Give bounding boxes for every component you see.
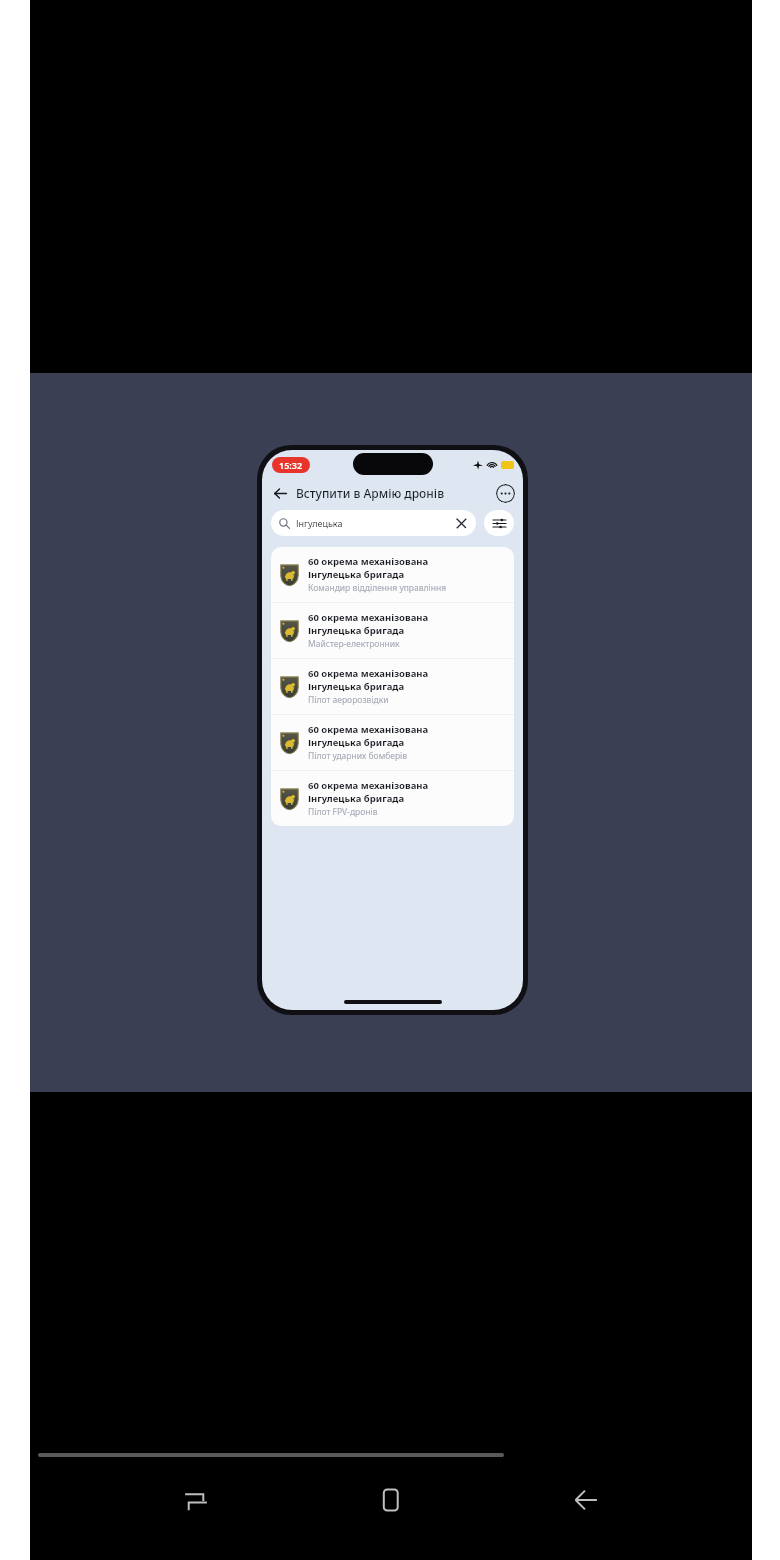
staticText: 60 окрема механізована <box>308 555 429 568</box>
staticText: Інгулецька бригада <box>308 792 405 805</box>
staticText: Інгулецька бригада <box>308 736 405 749</box>
button[interactable]: More options <box>496 484 515 503</box>
button[interactable]: Інгулецька <box>271 510 476 536</box>
button[interactable]: Recent apps <box>167 1471 225 1529</box>
staticText: Пілот FPV-дронів <box>308 806 378 818</box>
button[interactable]: Clear search <box>454 516 468 530</box>
staticText: 60 окрема механізована <box>308 611 429 624</box>
button[interactable]: 60 окрема механізована <box>271 715 514 770</box>
staticText: Інгулецька бригада <box>308 624 405 637</box>
button[interactable]: 60 окрема механізована <box>271 659 514 714</box>
staticText: Пілот ударних бомберів <box>308 750 408 762</box>
staticText: 60 окрема механізована <box>308 667 429 680</box>
button[interactable]: 60 окрема механізована <box>271 771 514 826</box>
staticText: Інгулецька бригада <box>308 568 405 581</box>
staticText: 15:32 <box>279 459 303 471</box>
staticText: 60 окрема механізована <box>308 723 429 736</box>
button[interactable]: Back <box>270 483 290 503</box>
button[interactable]: 60 окрема механізована <box>271 547 514 602</box>
staticText: Інгулецька <box>296 517 454 529</box>
staticText: Інгулецька бригада <box>308 680 405 693</box>
button[interactable]: 60 окрема механізована <box>271 603 514 658</box>
staticText: 60 окрема механізована <box>308 779 429 792</box>
button[interactable]: Filters <box>484 510 514 536</box>
staticText: Майстер-електронник <box>308 638 400 650</box>
staticText: Вступити в Армію дронів <box>296 485 496 501</box>
staticText: Командир відділення управління <box>308 582 447 594</box>
button[interactable]: Home <box>362 1471 420 1529</box>
staticText: Пілот аеророзвідки <box>308 694 389 706</box>
button[interactable]: Back <box>557 1471 615 1529</box>
